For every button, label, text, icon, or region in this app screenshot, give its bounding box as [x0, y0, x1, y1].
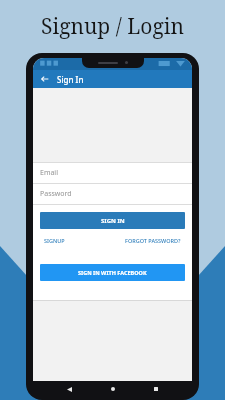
button[interactable]: Password [33, 184, 192, 204]
button[interactable]: Back [38, 72, 52, 86]
button[interactable]: SIGN IN [40, 212, 185, 229]
button[interactable]: Email [33, 163, 192, 183]
staticText: Sign In [57, 74, 84, 85]
staticText: SIGN IN WITH FACEBOOK [78, 269, 147, 276]
button[interactable]: SIGNUP [42, 235, 67, 246]
button[interactable]: Back [62, 382, 76, 396]
button[interactable]: SIGN IN WITH FACEBOOK [40, 264, 185, 281]
staticText: SIGNUP [44, 237, 65, 244]
staticText: Password [40, 189, 72, 199]
staticText: Signup / Login [41, 12, 184, 41]
staticText: SIGN IN [101, 217, 125, 225]
staticText: Email [40, 168, 58, 178]
button[interactable]: Recents [149, 382, 163, 396]
button[interactable]: Home [106, 382, 120, 396]
button[interactable]: FORGOT PASSWORD? [123, 235, 183, 246]
staticText: FORGOT PASSWORD? [125, 237, 181, 244]
